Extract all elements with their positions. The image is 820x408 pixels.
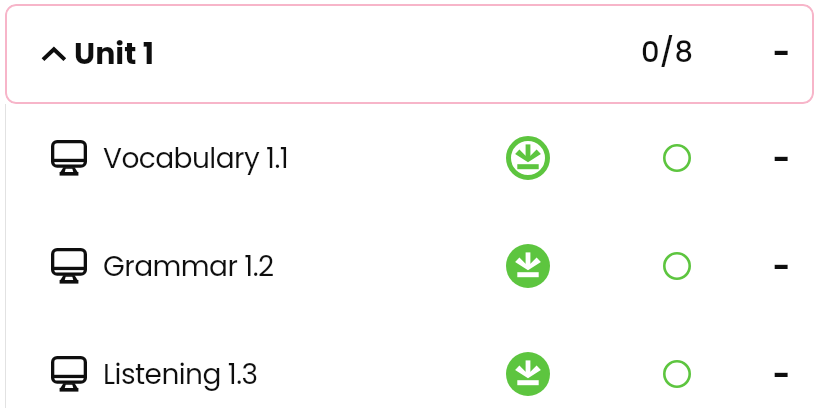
button[interactable]: Lesson progress [633, 320, 721, 408]
staticText: Unit 1 [74, 33, 155, 75]
staticText: - [773, 138, 791, 180]
button[interactable]: Download lesson [484, 212, 572, 320]
button[interactable]: Download lesson [484, 320, 572, 408]
button[interactable]: Listening 1.3 [0, 320, 820, 408]
button[interactable]: Lesson progress [633, 212, 721, 320]
button[interactable]: Lesson progress [633, 104, 721, 212]
staticText: Vocabulary 1.1 [103, 139, 289, 178]
staticText: - [773, 354, 791, 396]
button[interactable]: Vocabulary 1.1 [0, 104, 820, 212]
staticText: Grammar 1.2 [103, 247, 274, 286]
staticText: - [773, 32, 791, 74]
staticText: Listening 1.3 [103, 355, 258, 394]
button[interactable]: Download lesson [484, 104, 572, 212]
button[interactable]: Grammar 1.2 [0, 212, 820, 320]
staticText: 0/8 [641, 32, 693, 73]
staticText: - [773, 246, 791, 288]
button[interactable]: Unit 1 [5, 4, 814, 104]
